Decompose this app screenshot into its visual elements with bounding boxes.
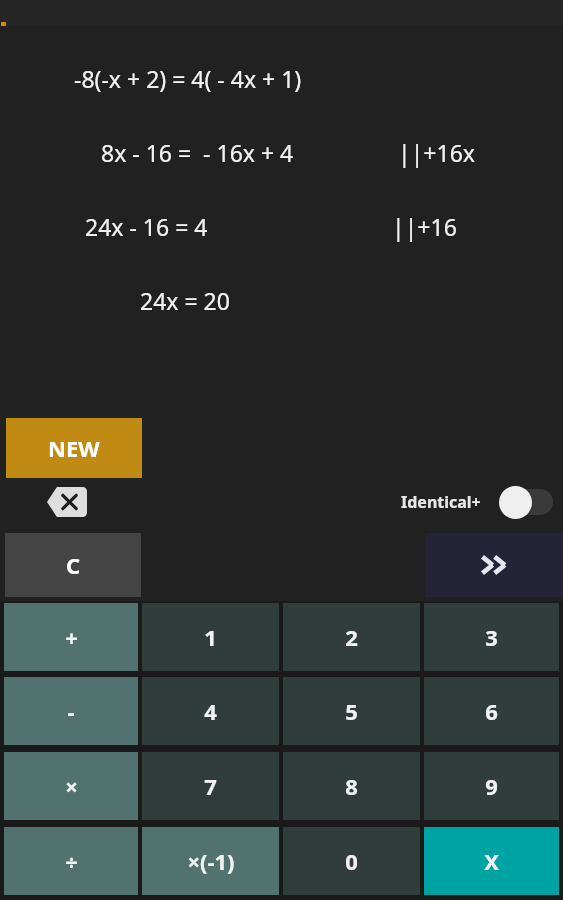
staticText: -8(-x + 2) = 4( - 4x + 1) [74, 63, 302, 94]
button[interactable]: 1 [142, 603, 279, 671]
button[interactable]: 2 [283, 603, 420, 671]
button[interactable]: × [4, 752, 138, 820]
staticText: 7 [204, 771, 217, 801]
button[interactable]: NEW [6, 418, 142, 478]
button[interactable]: 6 [424, 677, 559, 745]
button[interactable]: C [5, 533, 141, 597]
staticText: ÷ [65, 846, 78, 876]
button[interactable]: + [4, 603, 138, 671]
staticText: 1 [204, 622, 217, 652]
staticText: 0 [345, 846, 358, 876]
staticText: ||+16 [392, 211, 457, 242]
button[interactable]: X [424, 827, 559, 895]
button[interactable]: 5 [283, 677, 420, 745]
staticText: NEW [48, 433, 100, 463]
staticText: ×(-1) [187, 846, 235, 876]
button[interactable]: 8 [283, 752, 420, 820]
button[interactable]: Backspace [46, 486, 88, 518]
staticText: 24x = 20 [140, 285, 230, 316]
staticText: 8x - 16 = - 16x + 4 [101, 137, 294, 168]
staticText: 4 [204, 696, 217, 726]
button[interactable]: ×(-1) [142, 827, 279, 895]
staticText: C [66, 550, 81, 580]
staticText: X [484, 846, 499, 876]
staticText: ||+16x [398, 137, 475, 168]
button[interactable]: - [4, 677, 138, 745]
staticText: 3 [485, 622, 498, 652]
staticText: 8 [345, 771, 358, 801]
staticText: Identical+ [401, 491, 481, 513]
staticText: 24x - 16 = 4 [85, 211, 208, 242]
staticText: 2 [345, 622, 358, 652]
staticText: 6 [485, 696, 498, 726]
button[interactable]: 7 [142, 752, 279, 820]
button[interactable]: ÷ [4, 827, 138, 895]
button[interactable]: 9 [424, 752, 559, 820]
staticText: 5 [345, 696, 358, 726]
staticText: - [67, 696, 75, 726]
button[interactable]: Next [425, 533, 563, 597]
button[interactable]: 3 [424, 603, 559, 671]
staticText: 9 [485, 771, 498, 801]
staticText: + [65, 622, 78, 652]
button[interactable]: 0 [283, 827, 420, 895]
button[interactable]: Identical+ [401, 479, 555, 525]
staticText: × [65, 771, 78, 801]
button[interactable]: 4 [142, 677, 279, 745]
